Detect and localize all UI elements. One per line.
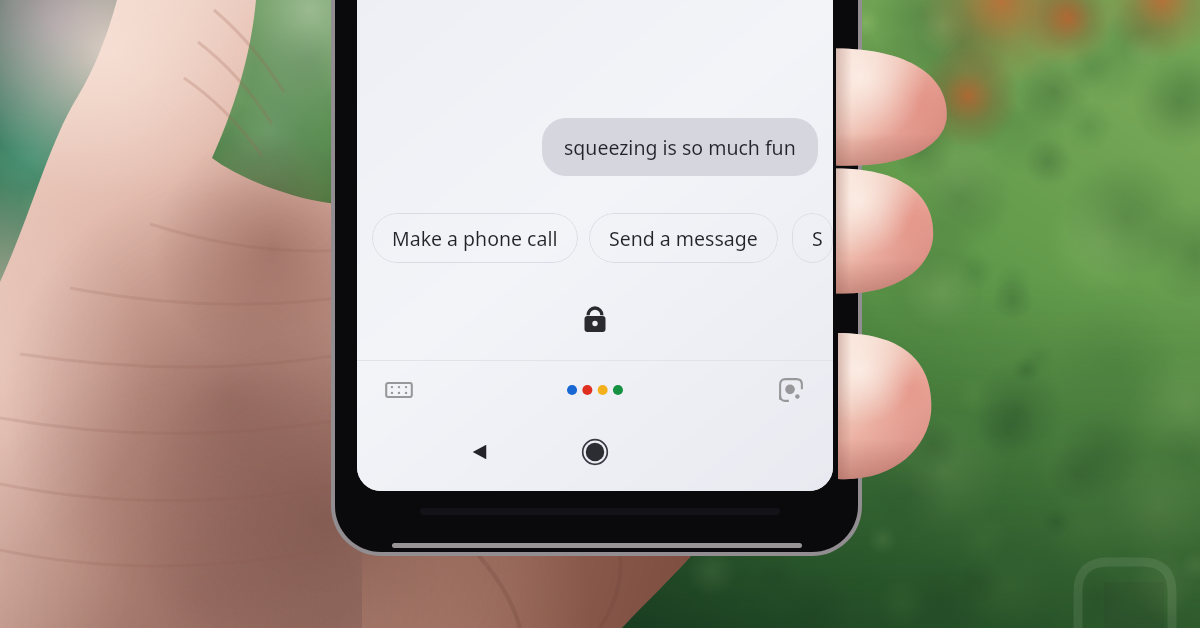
staticText: squeezing is so much fun	[564, 134, 796, 161]
staticText: Make a phone call	[392, 225, 558, 252]
button[interactable]: squeezing is so much fun	[542, 118, 818, 176]
button[interactable]: Home	[581, 438, 609, 466]
button[interactable]: Google Assistant	[567, 384, 623, 396]
button[interactable]: Google Lens	[775, 374, 807, 406]
button[interactable]: Send a message	[589, 213, 778, 263]
button[interactable]: Make a phone call	[372, 213, 578, 263]
button[interactable]: Lock	[580, 305, 610, 335]
button[interactable]: Keyboard	[383, 374, 415, 406]
staticText: Send a message	[609, 225, 758, 252]
button[interactable]: Set a reminder	[792, 213, 833, 263]
button[interactable]: Back	[467, 439, 493, 465]
